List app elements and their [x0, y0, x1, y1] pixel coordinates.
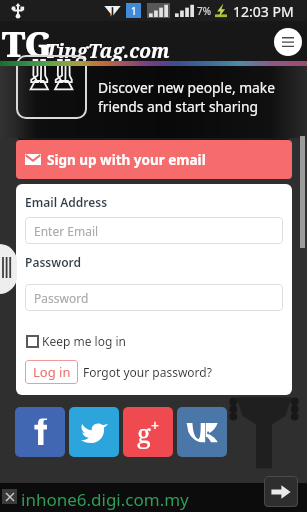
staticText: Keep me log in	[42, 333, 126, 349]
button[interactable]: VK	[177, 407, 227, 457]
button[interactable]: Next	[264, 476, 298, 507]
button[interactable]: Google Plus	[123, 407, 173, 457]
staticText: Email Address	[25, 194, 108, 210]
staticText: TG	[2, 21, 53, 65]
staticText: Enter Email	[34, 223, 99, 239]
staticText: +	[151, 416, 160, 435]
staticText: Sign up with your email	[47, 151, 206, 169]
button[interactable]: Drag handle	[0, 244, 17, 294]
staticText: Password	[34, 290, 89, 306]
staticText: inhone6.digi.com.my	[21, 488, 189, 511]
staticText: 12:03 PM	[233, 2, 294, 21]
button[interactable]: Menu	[274, 28, 302, 56]
button[interactable]: Forgot your password?	[83, 364, 212, 380]
button[interactable]: Twitter	[69, 407, 119, 457]
button[interactable]: Facebook	[15, 407, 65, 457]
button[interactable]: Log in	[25, 360, 78, 384]
button[interactable]: Keep me log in	[26, 333, 126, 349]
button[interactable]: Enter Email	[25, 217, 283, 244]
staticText: 1	[131, 4, 137, 18]
button[interactable]: Close	[2, 489, 17, 504]
staticText: TingTag.com	[45, 38, 170, 64]
staticText: Discover new people, make friends and st…	[98, 78, 275, 116]
staticText: Password	[25, 254, 82, 270]
staticText: 7%	[197, 4, 212, 18]
button[interactable]: Sign up with your email	[16, 140, 292, 179]
staticText: Log in	[33, 363, 71, 381]
button[interactable]: Password	[25, 284, 283, 311]
staticText: g	[137, 415, 151, 450]
